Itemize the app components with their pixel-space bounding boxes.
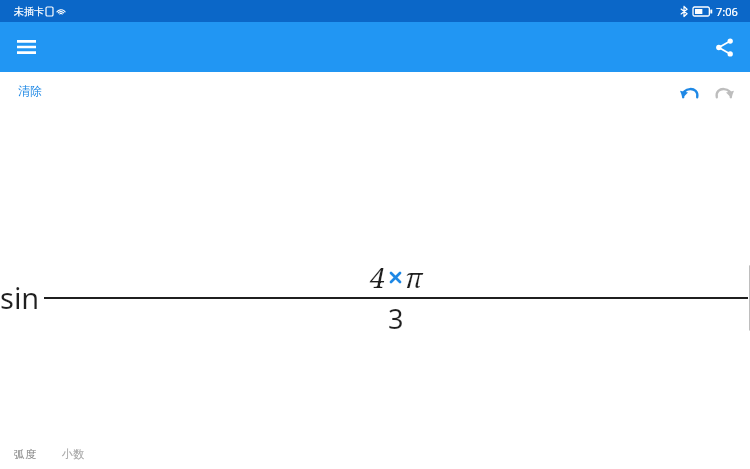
staticText: 弧度	[14, 447, 36, 461]
button[interactable]: sin	[0, 156, 750, 439]
button[interactable]: Redo	[708, 74, 740, 106]
button[interactable]: Share	[706, 29, 742, 65]
staticText: 清除	[18, 83, 42, 98]
staticText: π	[405, 259, 423, 296]
staticText: 3	[388, 300, 404, 337]
button[interactable]: 小数	[56, 443, 90, 465]
staticText: 4	[370, 259, 386, 296]
button[interactable]: 弧度	[8, 443, 42, 465]
staticText: 7:06	[716, 4, 738, 19]
staticText: sin	[0, 278, 40, 317]
button[interactable]: Menu	[8, 29, 44, 65]
staticText: 未插卡	[14, 5, 44, 18]
button[interactable]: 清除	[10, 78, 50, 103]
button[interactable]: Undo	[674, 74, 706, 106]
staticText: 小数	[62, 447, 84, 461]
